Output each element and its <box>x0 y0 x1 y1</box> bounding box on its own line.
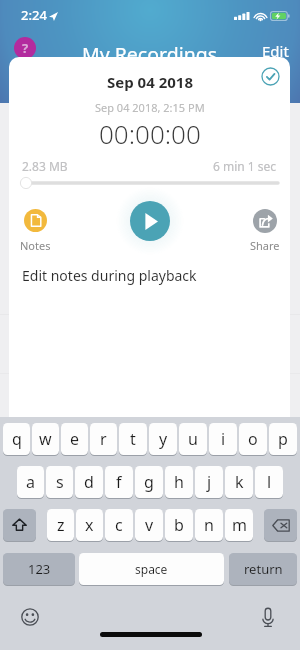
staticText: 2:24 <box>21 6 47 24</box>
staticText: 6 min 1 sec <box>213 158 277 174</box>
button[interactable]: u <box>179 423 207 455</box>
staticText: Notes <box>20 238 51 253</box>
button[interactable]: d <box>75 466 103 498</box>
button[interactable]: m <box>225 509 253 541</box>
button[interactable]: Shift <box>3 509 36 541</box>
button[interactable]: c <box>105 509 133 541</box>
staticText: c <box>115 514 123 536</box>
button[interactable]: e <box>61 423 88 455</box>
button[interactable]: r <box>90 423 117 455</box>
staticText: Edit notes during playback <box>22 266 197 285</box>
staticText: f <box>116 471 122 493</box>
staticText: e <box>70 428 80 450</box>
button[interactable]: q <box>3 423 30 455</box>
button[interactable]: Notes <box>24 209 47 232</box>
button[interactable]: Play <box>130 201 170 241</box>
staticText: p <box>278 428 288 450</box>
staticText: space <box>135 561 168 577</box>
button[interactable]: i <box>209 423 237 455</box>
staticText: j <box>207 471 212 493</box>
button[interactable]: Share <box>253 209 277 233</box>
button[interactable]: Help <box>14 37 36 59</box>
button[interactable]: Selected <box>261 67 280 86</box>
staticText: h <box>174 471 184 493</box>
button[interactable]: p <box>269 423 297 455</box>
staticText: m <box>232 514 247 536</box>
button[interactable]: k <box>225 466 253 498</box>
button[interactable]: w <box>32 423 59 455</box>
staticText: Share <box>250 238 280 253</box>
button[interactable]: z <box>47 509 74 541</box>
staticText: i <box>221 428 226 450</box>
staticText: ? <box>22 39 29 57</box>
staticText: v <box>145 514 154 536</box>
staticText: o <box>248 428 258 450</box>
button[interactable]: 123 <box>3 553 75 585</box>
staticText: t <box>130 428 136 450</box>
staticText: r <box>100 428 107 450</box>
staticText: My Recordings <box>82 41 218 68</box>
staticText: w <box>39 428 52 450</box>
staticText: 00:00:00 <box>99 116 201 151</box>
button[interactable]: a <box>17 466 44 498</box>
staticText: Edit <box>262 41 289 61</box>
button[interactable]: Edit <box>262 41 300 61</box>
staticText: 123 <box>28 560 51 578</box>
button[interactable]: s <box>46 466 73 498</box>
button[interactable]: Dictation <box>261 607 275 628</box>
button[interactable]: x <box>76 509 103 541</box>
button[interactable]: v <box>135 509 163 541</box>
staticText: l <box>267 471 272 493</box>
staticText: d <box>84 471 94 493</box>
button[interactable]: l <box>255 466 283 498</box>
staticText: Sep 04 2018, 2:15 PM <box>95 100 205 115</box>
staticText: x <box>85 514 94 536</box>
button[interactable]: j <box>195 466 223 498</box>
staticText: b <box>174 514 184 536</box>
button[interactable]: b <box>165 509 193 541</box>
button[interactable]: n <box>195 509 223 541</box>
button[interactable]: Backspace <box>264 509 297 541</box>
button[interactable]: g <box>135 466 163 498</box>
staticText: u <box>188 428 198 450</box>
staticText: 2.83 MB <box>22 158 68 174</box>
button[interactable]: return <box>229 553 297 585</box>
staticText: k <box>235 471 244 493</box>
staticText: Sep 04 2018 <box>107 72 193 92</box>
button[interactable]: t <box>119 423 147 455</box>
button[interactable]: y <box>149 423 177 455</box>
staticText: a <box>26 471 35 493</box>
staticText: y <box>159 428 168 450</box>
staticText: return <box>244 560 283 578</box>
button[interactable]: o <box>239 423 267 455</box>
button[interactable]: h <box>165 466 193 498</box>
staticText: q <box>12 428 22 450</box>
staticText: g <box>144 471 154 493</box>
button[interactable]: f <box>105 466 133 498</box>
staticText: s <box>56 471 64 493</box>
staticText: z <box>57 514 65 536</box>
staticText: n <box>204 514 214 536</box>
button[interactable]: Emoji <box>21 608 39 626</box>
button[interactable]: space <box>79 553 224 585</box>
